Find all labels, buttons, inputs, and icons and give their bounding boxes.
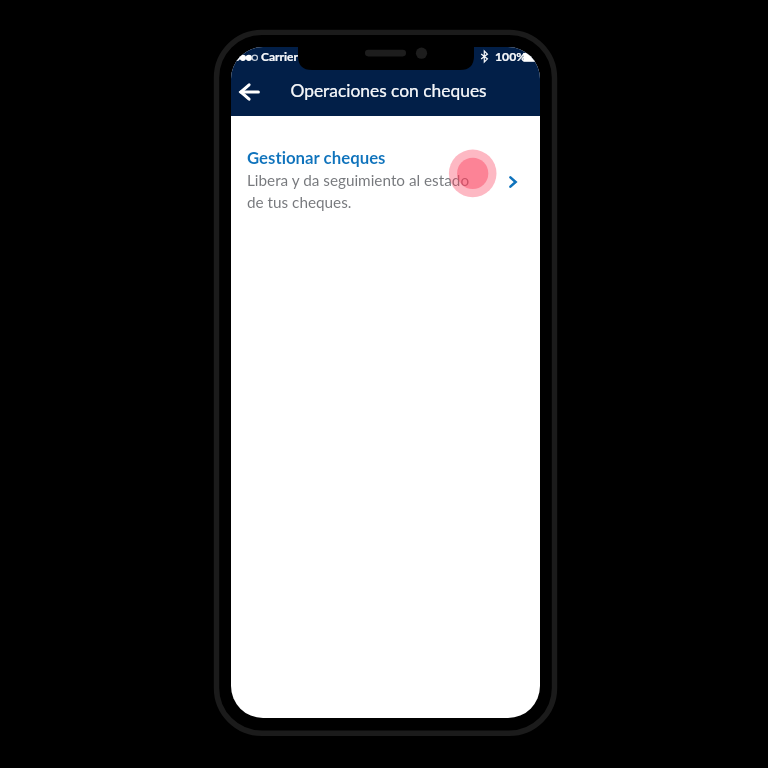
staticText: Operaciones con cheques	[234, 80, 540, 101]
staticText: Carrier	[261, 49, 298, 63]
staticText: Gestionar cheques	[247, 147, 386, 167]
staticText: 100%	[495, 49, 527, 64]
button[interactable]: Back	[231, 70, 271, 114]
button[interactable]: Gestionar cheques	[231, 116, 540, 225]
staticText: Libera y da seguimiento al estado de tus…	[247, 171, 479, 211]
